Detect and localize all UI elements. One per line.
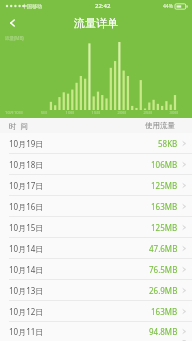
button[interactable]: 10月12日 bbox=[0, 301, 192, 321]
staticText: 流量(MB) bbox=[5, 35, 24, 41]
staticText: 15日 bbox=[83, 110, 109, 116]
staticText: 10日 bbox=[57, 110, 83, 116]
button[interactable]: 10月14日 bbox=[0, 238, 192, 258]
staticText: 10月12日 bbox=[9, 306, 44, 317]
staticText: 163MB bbox=[151, 201, 178, 212]
staticText: 10月14日 bbox=[9, 243, 44, 254]
staticText: 10月15日 bbox=[9, 222, 44, 233]
staticText: 10月19日 bbox=[9, 138, 44, 149]
staticText: 125MB bbox=[151, 180, 178, 191]
staticText: 44% bbox=[163, 3, 173, 10]
staticText: 流量详单 bbox=[74, 16, 118, 30]
staticText: 10月14日 bbox=[9, 264, 44, 275]
staticText: 10月17日 bbox=[9, 180, 44, 191]
button[interactable]: 10月18日 bbox=[0, 154, 192, 174]
staticText: 25日 bbox=[135, 110, 161, 116]
staticText: 76.5MB bbox=[149, 264, 178, 275]
staticText: 10月13日 bbox=[9, 285, 44, 296]
staticText: 47.6MB bbox=[149, 243, 178, 254]
button[interactable]: 10月19日 bbox=[0, 133, 192, 153]
button[interactable]: Back bbox=[0, 12, 26, 34]
staticText: 5日 bbox=[31, 110, 57, 116]
staticText: 58KB bbox=[158, 138, 178, 149]
staticText: 163MB bbox=[151, 306, 178, 317]
button[interactable]: 10月16日 bbox=[0, 196, 192, 216]
button[interactable]: 10月13日 bbox=[0, 280, 192, 300]
button[interactable]: 10月14日 bbox=[0, 259, 192, 279]
button[interactable]: 10月11日 bbox=[0, 322, 192, 341]
staticText: 使用流量 bbox=[145, 121, 175, 130]
staticText: 20日 bbox=[109, 110, 135, 116]
staticText: 中国移动 bbox=[22, 3, 44, 10]
staticText: 10月11日 bbox=[9, 326, 44, 337]
staticText: 30日 bbox=[161, 110, 187, 116]
staticText: 22:42 bbox=[95, 2, 111, 10]
staticText: 125MB bbox=[151, 222, 178, 233]
button[interactable]: 10月17日 bbox=[0, 175, 192, 195]
staticText: 10月10日 bbox=[5, 110, 31, 116]
staticText: 94.8MB bbox=[149, 326, 178, 337]
button[interactable]: 10月15日 bbox=[0, 217, 192, 237]
staticText: 时 间 bbox=[9, 121, 28, 131]
staticText: 10月18日 bbox=[9, 159, 44, 170]
staticText: 10月16日 bbox=[9, 201, 44, 212]
staticText: 106MB bbox=[151, 159, 178, 170]
staticText: 26.9MB bbox=[149, 285, 178, 296]
